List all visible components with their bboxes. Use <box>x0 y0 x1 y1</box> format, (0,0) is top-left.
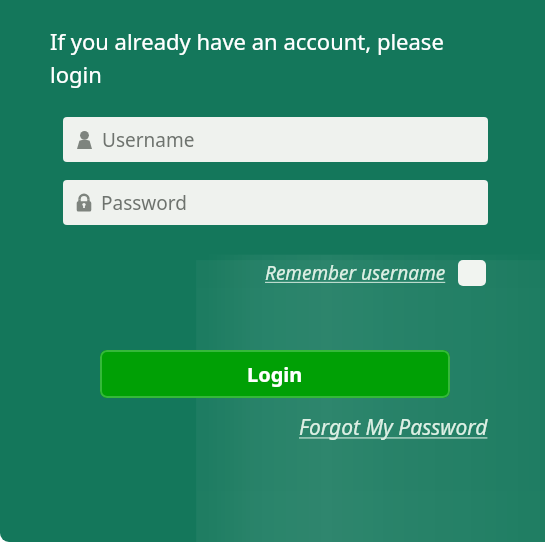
staticText: Username <box>102 127 195 153</box>
staticText: If you already have an account, please l… <box>50 26 501 89</box>
other: Remember username checkbox <box>458 260 486 286</box>
staticText: Remember username <box>265 260 446 286</box>
button[interactable]: Password <box>63 180 488 225</box>
button[interactable]: Remember username <box>265 260 486 286</box>
button[interactable]: Forgot My Password <box>299 413 488 442</box>
button[interactable]: Username <box>63 117 488 162</box>
staticText: Forgot My Password <box>299 413 488 442</box>
button[interactable]: Login <box>100 350 450 398</box>
staticText: Login <box>247 361 303 388</box>
staticText: Password <box>101 190 187 216</box>
